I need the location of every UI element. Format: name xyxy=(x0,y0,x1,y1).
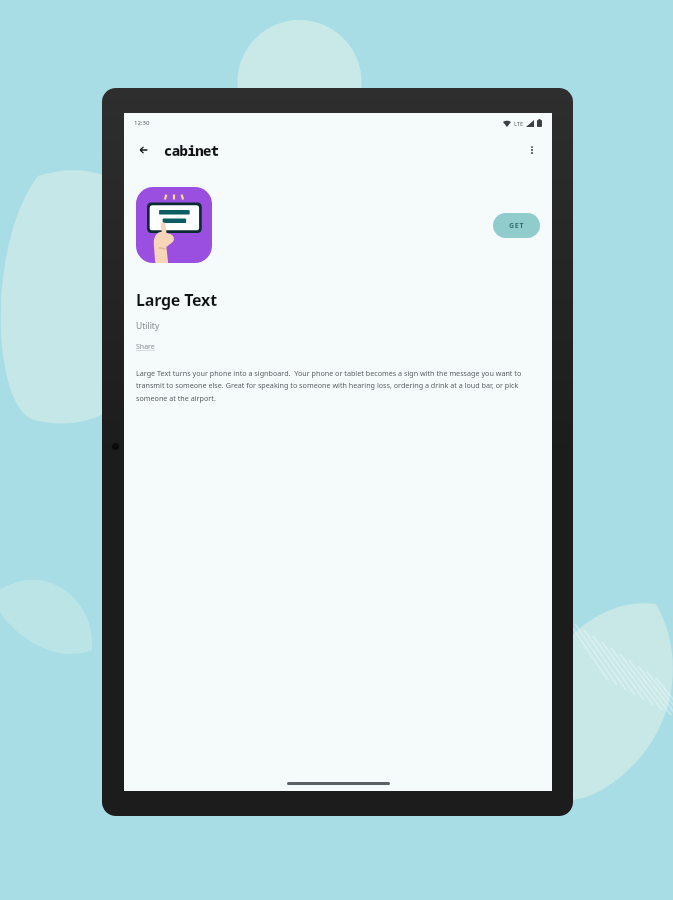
button[interactable]: GET xyxy=(493,213,540,238)
staticText: Large Text xyxy=(136,289,217,311)
staticText: Share xyxy=(136,342,155,352)
button[interactable]: Share xyxy=(136,342,155,352)
staticText: Utility xyxy=(136,320,160,332)
staticText: Large Text turns your phone into a signb… xyxy=(136,368,540,403)
button[interactable]: cabinet xyxy=(164,141,219,160)
staticText: GET xyxy=(509,221,525,231)
button[interactable]: Back xyxy=(132,138,156,162)
staticText: LTE xyxy=(514,120,523,127)
button[interactable]: More options xyxy=(520,138,544,162)
staticText: 12:30 xyxy=(134,119,150,127)
button[interactable]: Large Text app icon xyxy=(136,187,212,263)
